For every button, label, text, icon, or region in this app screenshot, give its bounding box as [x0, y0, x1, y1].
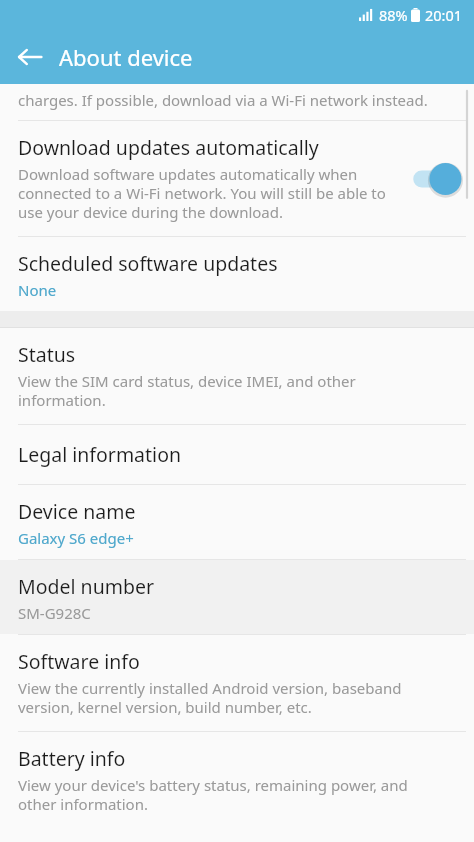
staticText: Galaxy S6 edge+ — [18, 528, 134, 548]
button[interactable]: Back — [7, 34, 53, 80]
staticText: Battery info — [18, 745, 126, 772]
staticText: Model number — [18, 573, 154, 600]
staticText: Download updates automatically — [18, 134, 319, 161]
staticText: Software info — [18, 648, 140, 675]
staticText: charges. If possible, download via a Wi-… — [18, 90, 428, 110]
staticText: 88% — [379, 5, 408, 25]
staticText: None — [18, 280, 57, 300]
staticText: Device name — [18, 498, 136, 525]
button[interactable]: Scheduled software updates — [0, 237, 474, 311]
staticText: Download software updates automatically … — [18, 164, 386, 223]
button[interactable]: Status — [0, 328, 474, 424]
staticText: About device — [59, 42, 193, 72]
button[interactable]: Legal information — [0, 425, 474, 484]
button[interactable]: Model number — [0, 560, 474, 634]
button[interactable]: Software info — [0, 635, 474, 731]
staticText: View the currently installed Android ver… — [18, 678, 402, 718]
button[interactable]: Download updates automatically — [0, 121, 474, 236]
staticText: SM-G928C — [18, 603, 91, 623]
button[interactable]: Battery info — [0, 732, 474, 828]
staticText: View the SIM card status, device IMEI, a… — [18, 371, 356, 411]
button[interactable]: Device name — [0, 485, 474, 559]
staticText: Legal information — [18, 441, 181, 468]
staticText: 20:01 — [425, 5, 463, 25]
button[interactable]: Download updates automatically — [410, 159, 464, 199]
staticText: Status — [18, 341, 76, 368]
staticText: View your device's battery status, remai… — [18, 775, 408, 815]
staticText: Scheduled software updates — [18, 250, 278, 277]
